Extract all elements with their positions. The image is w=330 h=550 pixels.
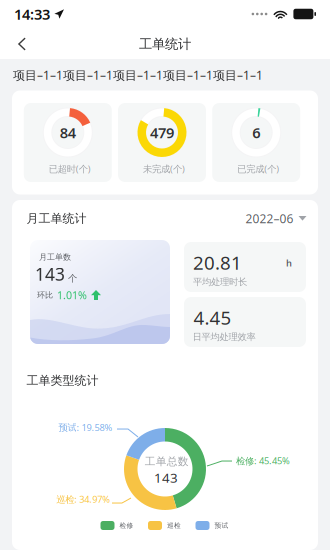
staticText: 143 [35,262,65,285]
staticText: 已超时(个) [49,163,91,175]
staticText: 日平均处理效率 [192,331,255,343]
staticText: 月工单统计 [26,211,86,226]
staticText: 14:33 [14,4,50,24]
staticText: 月工单数 [39,252,71,262]
staticText: 检修 [119,521,133,530]
staticText: 工单总数 [145,455,189,468]
staticText: 2022–06 [245,210,293,226]
staticText: 20.81 [193,250,242,275]
staticText: 巡检 [167,521,181,530]
staticText: 1.01% [57,288,87,302]
staticText: 84 [60,123,76,142]
button[interactable]: 2022–06 [240,205,311,231]
staticText: 项目–1–1项目–1–1项目–1–1项目–1–1项目–1–1 [13,67,263,83]
staticText: 工单统计 [139,36,191,52]
staticText: 已完成(个) [237,163,279,175]
staticText: 平均处理时长 [193,276,247,288]
staticText: 预试 [214,521,228,530]
staticText: 工单类型统计 [26,373,98,388]
staticText: 巡检: 34.97% [56,493,110,505]
staticText: 479 [150,123,174,142]
staticText: 检修: 45.45% [236,454,290,467]
staticText: 预试: 19.58% [58,421,112,433]
button[interactable]: Back [4,28,40,60]
staticText: 6 [252,123,260,142]
staticText: 环比 [37,290,53,300]
staticText: 143 [154,469,178,486]
staticText: 个 [68,272,77,284]
staticText: 未完成(个) [143,163,185,175]
staticText: h [286,257,292,269]
staticText: 4.45 [193,305,231,330]
